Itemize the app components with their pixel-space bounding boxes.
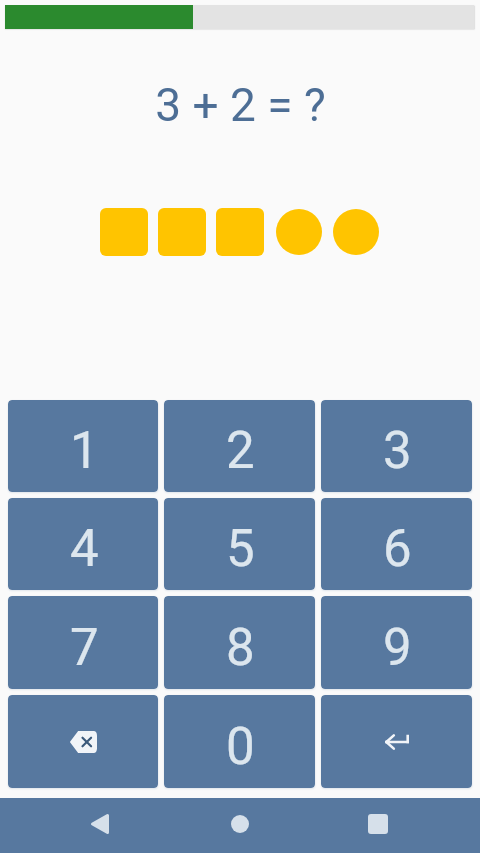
staticText: 6 (383, 519, 412, 579)
button[interactable]: Recent apps (354, 800, 402, 848)
staticText: 5 (226, 519, 255, 579)
button[interactable]: Home (216, 800, 264, 848)
button[interactable]: 2 (164, 400, 315, 492)
button[interactable]: 1 (8, 400, 158, 492)
button[interactable]: 6 (321, 498, 472, 590)
button[interactable]: 0 (164, 695, 315, 788)
staticText: 2 (226, 421, 255, 481)
button[interactable]: 3 (321, 400, 472, 492)
button[interactable]: Backspace (8, 695, 158, 788)
staticText: 9 (383, 618, 412, 678)
staticText: 3 (383, 421, 412, 481)
staticText: 1 (70, 421, 99, 481)
button[interactable]: 9 (321, 596, 472, 689)
staticText: 4 (70, 519, 99, 579)
button[interactable]: 7 (8, 596, 158, 689)
button[interactable]: 5 (164, 498, 315, 590)
button[interactable]: Back (76, 800, 124, 848)
staticText: 3 + 2 = ? (155, 78, 326, 132)
button[interactable]: 8 (164, 596, 315, 689)
staticText: 0 (226, 717, 255, 777)
staticText: 8 (226, 618, 255, 678)
button[interactable]: 4 (8, 498, 158, 590)
staticText: 7 (70, 618, 99, 678)
button[interactable]: Enter (321, 695, 472, 788)
